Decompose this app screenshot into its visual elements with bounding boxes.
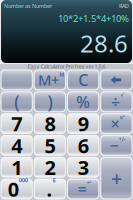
staticText: 8 xyxy=(44,110,55,137)
staticText: × xyxy=(110,113,119,134)
staticText: RAD xyxy=(119,2,129,10)
button[interactable]: Backspace xyxy=(100,69,133,91)
staticText: 28.6 xyxy=(80,27,128,59)
button[interactable]: Clear xyxy=(66,69,100,91)
button[interactable]: 9 xyxy=(66,113,100,134)
staticText: 7 xyxy=(11,110,22,137)
button[interactable]: Close parenthesis xyxy=(33,91,66,113)
button[interactable]: 8 xyxy=(33,113,66,134)
staticText: C xyxy=(78,69,88,90)
button[interactable]: Equals xyxy=(66,178,100,200)
staticText: 10*2+1.5*4+10% xyxy=(58,12,129,25)
button[interactable]: 1 xyxy=(0,156,33,178)
staticText: 9 xyxy=(78,110,89,137)
staticText: . xyxy=(46,176,52,200)
staticText: M+ xyxy=(38,70,59,90)
staticText: − xyxy=(109,135,118,156)
staticText: √ xyxy=(120,92,124,98)
button[interactable]: Memory add xyxy=(33,69,66,91)
staticText: ↵ xyxy=(87,179,91,185)
staticText: 0 xyxy=(8,176,19,200)
button[interactable]: 0 xyxy=(0,178,33,200)
button[interactable]: Minus xyxy=(100,134,133,156)
staticText: % xyxy=(76,91,90,112)
staticText: 2 xyxy=(44,154,55,181)
staticText: 5 xyxy=(44,132,55,159)
button[interactable]: Decimal point xyxy=(33,178,66,200)
staticText: 3 xyxy=(78,154,89,181)
staticText: E xyxy=(53,177,56,184)
button[interactable]: 5 xyxy=(33,134,66,156)
button[interactable]: Plus xyxy=(100,156,133,200)
button[interactable]: 2 xyxy=(33,156,66,178)
staticText: 4 xyxy=(11,132,22,159)
button[interactable]: 4 xyxy=(0,134,33,156)
staticText: 1 xyxy=(11,154,22,181)
button[interactable]: 7 xyxy=(0,113,33,134)
button[interactable]: Multiply xyxy=(100,113,133,134)
staticText: = xyxy=(78,178,87,200)
staticText: x² xyxy=(120,114,125,121)
staticText: ( xyxy=(14,90,19,113)
staticText: +/- xyxy=(119,136,126,143)
staticText: 000 xyxy=(19,177,28,184)
staticText: ÷ xyxy=(111,91,120,112)
staticText: M xyxy=(59,71,64,78)
staticText: + xyxy=(111,165,122,191)
button[interactable]: Divide xyxy=(100,91,133,113)
staticText: ) xyxy=(47,90,52,113)
button[interactable]: Memory recall xyxy=(0,69,33,91)
staticText: 6 xyxy=(78,132,89,159)
button[interactable]: Percent xyxy=(66,91,100,113)
staticText: Easy Calculator Pro free ver. 1.0.6 xyxy=(27,63,105,70)
button[interactable]: 6 xyxy=(66,134,100,156)
staticText: Number as Number xyxy=(4,2,52,10)
button[interactable]: 3 xyxy=(66,156,100,178)
button[interactable]: Open parenthesis xyxy=(0,91,33,113)
